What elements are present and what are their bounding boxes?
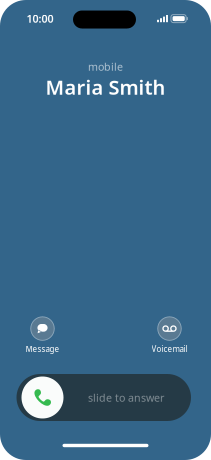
staticText: slide to answer xyxy=(88,390,164,405)
staticText: mobile xyxy=(88,59,123,74)
button[interactable]: Message xyxy=(12,317,72,354)
staticText: 10:00 xyxy=(26,11,53,26)
button[interactable]: Answer call xyxy=(21,376,63,418)
button[interactable]: Voicemail xyxy=(139,317,199,354)
staticText: Voicemail xyxy=(151,343,187,354)
staticText: Maria Smith xyxy=(45,74,165,100)
staticText: Message xyxy=(25,343,59,354)
